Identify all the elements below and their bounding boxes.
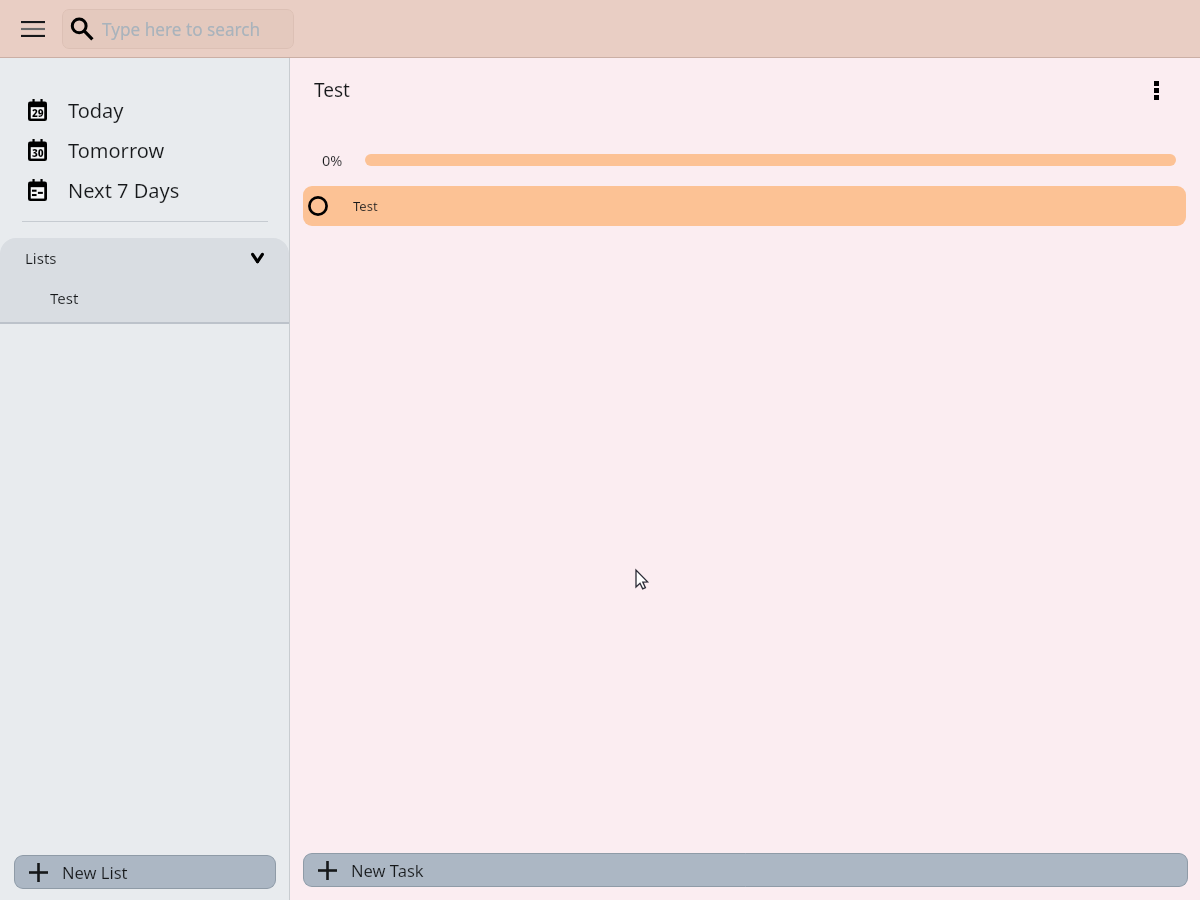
button[interactable]: Test <box>0 277 289 318</box>
button[interactable]: Lists <box>0 238 289 277</box>
staticText: Type here to search <box>102 18 261 41</box>
button[interactable]: Mark task complete <box>303 186 1186 226</box>
button[interactable]: More options <box>1137 71 1175 109</box>
staticText: Today <box>68 97 124 124</box>
button[interactable]: New Task <box>303 853 1188 887</box>
button[interactable]: Next 7 Days <box>0 170 289 210</box>
staticText: 30 <box>32 146 44 160</box>
button[interactable]: Type here to search <box>62 9 294 49</box>
staticText: Test <box>314 77 350 103</box>
other: Collapse lists <box>251 253 264 263</box>
staticText: Test <box>353 197 378 215</box>
button[interactable]: New List <box>14 855 276 889</box>
button[interactable]: Menu <box>11 7 55 51</box>
staticText: New Task <box>351 859 424 881</box>
staticText: Test <box>50 288 79 308</box>
staticText: New List <box>62 861 128 883</box>
button[interactable]: Mark task complete <box>304 192 332 220</box>
staticText: 0% <box>322 150 343 170</box>
staticText: Tomorrow <box>68 137 165 164</box>
staticText: Lists <box>25 248 57 268</box>
staticText: Next 7 Days <box>68 177 180 204</box>
button[interactable]: 29 <box>0 90 289 130</box>
button[interactable]: 30 <box>0 130 289 170</box>
staticText: 29 <box>32 106 44 120</box>
